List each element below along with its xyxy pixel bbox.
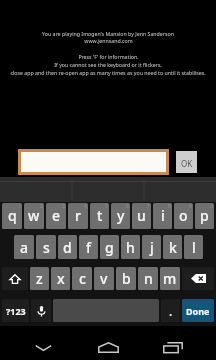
staticText: 1 bbox=[18, 203, 21, 210]
staticText: 6 bbox=[126, 203, 129, 210]
staticText: i bbox=[161, 206, 165, 225]
staticText: 3 bbox=[62, 203, 65, 210]
button[interactable]: l bbox=[184, 235, 203, 259]
staticText: OK bbox=[181, 158, 193, 169]
button[interactable]: e bbox=[46, 203, 66, 229]
button[interactable]: s bbox=[36, 235, 56, 259]
staticText: x bbox=[57, 269, 65, 288]
staticText: h bbox=[126, 238, 135, 257]
staticText: 0 bbox=[210, 203, 213, 210]
button[interactable]: q bbox=[2, 203, 22, 229]
button[interactable]: u bbox=[132, 203, 151, 229]
button[interactable]: r bbox=[68, 203, 88, 229]
staticText: 5 bbox=[105, 203, 108, 210]
button[interactable]: o bbox=[174, 203, 193, 229]
staticText: r bbox=[75, 206, 81, 225]
staticText: e bbox=[52, 206, 61, 225]
button[interactable]: . bbox=[161, 299, 180, 322]
button[interactable]: h bbox=[121, 235, 140, 259]
staticText: c bbox=[79, 269, 86, 288]
button[interactable]: Shift bbox=[2, 267, 28, 290]
staticText: 4 bbox=[84, 203, 87, 210]
button[interactable]: Backspace bbox=[182, 267, 214, 290]
button[interactable]: Voice input bbox=[31, 299, 51, 322]
staticText: ?123 bbox=[6, 305, 26, 317]
staticText: 8 bbox=[168, 203, 171, 210]
staticText: w bbox=[28, 206, 40, 225]
button[interactable]: c bbox=[72, 267, 92, 290]
staticText: If you cannot see the keyboard or it fli… bbox=[54, 61, 162, 68]
button[interactable]: Done bbox=[182, 299, 214, 322]
button[interactable]: w bbox=[24, 203, 44, 229]
staticText: 9 bbox=[189, 203, 192, 210]
staticText: p bbox=[200, 206, 209, 225]
button[interactable]: i bbox=[153, 203, 172, 229]
staticText: v bbox=[100, 269, 108, 288]
staticText: t bbox=[97, 206, 103, 225]
button[interactable]: ?123 bbox=[2, 299, 29, 322]
button[interactable]: t bbox=[90, 203, 109, 229]
button[interactable]: x bbox=[51, 267, 70, 290]
staticText: f bbox=[86, 238, 91, 257]
staticText: s bbox=[43, 238, 50, 257]
staticText: q bbox=[8, 206, 17, 225]
button[interactable]: g bbox=[100, 235, 119, 259]
staticText: k bbox=[169, 238, 177, 257]
staticText: z bbox=[36, 269, 43, 288]
button[interactable]: Hide keyboard bbox=[21, 336, 65, 359]
staticText: 7 bbox=[147, 203, 150, 210]
staticText: g bbox=[105, 238, 114, 257]
staticText: a bbox=[20, 238, 29, 257]
staticText: n bbox=[144, 269, 153, 288]
button[interactable]: m bbox=[160, 267, 180, 290]
staticText: You are playing Imogen's Mansion by Jenn… bbox=[42, 30, 174, 37]
button[interactable]: p bbox=[195, 203, 214, 229]
button[interactable]: a bbox=[14, 235, 34, 259]
staticText: b bbox=[122, 269, 131, 288]
staticText: www.jennsand.com bbox=[84, 37, 133, 44]
button[interactable]: v bbox=[94, 267, 114, 290]
staticText: Press 'F' for information. bbox=[78, 53, 139, 60]
staticText: d bbox=[63, 238, 72, 257]
staticText: close app and then re-open app as many t… bbox=[10, 69, 206, 76]
button[interactable]: z bbox=[30, 267, 49, 290]
button[interactable]: b bbox=[116, 267, 136, 290]
staticText: . bbox=[169, 303, 173, 319]
button[interactable]: j bbox=[142, 235, 161, 259]
button[interactable]: d bbox=[58, 235, 77, 259]
button[interactable]: f bbox=[79, 235, 98, 259]
staticText: Done bbox=[186, 305, 210, 317]
staticText: o bbox=[179, 206, 188, 225]
staticText: l bbox=[192, 238, 196, 257]
button[interactable]: Home bbox=[86, 336, 130, 359]
button[interactable]: n bbox=[138, 267, 158, 290]
button[interactable]: OK bbox=[176, 151, 197, 173]
staticText: u bbox=[137, 206, 146, 225]
button[interactable]: Recent apps bbox=[151, 336, 195, 359]
staticText: 2 bbox=[40, 203, 43, 210]
staticText: y bbox=[117, 206, 125, 225]
staticText: j bbox=[150, 238, 154, 257]
button[interactable]: k bbox=[163, 235, 182, 259]
button[interactable]: y bbox=[111, 203, 130, 229]
staticText: m bbox=[163, 269, 177, 288]
